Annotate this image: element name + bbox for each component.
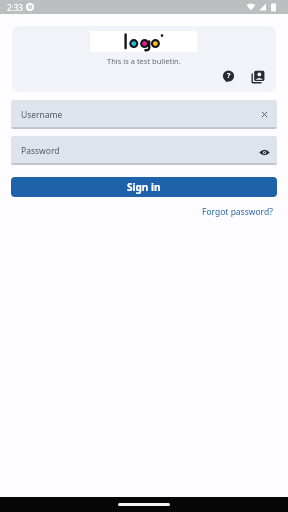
- button[interactable]: Sign in: [11, 177, 277, 197]
- staticText: ?: [227, 71, 231, 81]
- button[interactable]: [251, 70, 265, 84]
- staticText: Password: [21, 145, 60, 157]
- staticText: Forgot password?: [202, 206, 273, 218]
- staticText: 2:33: [7, 2, 23, 13]
- button[interactable]: Forgot password?: [180, 204, 273, 220]
- button[interactable]: ?: [222, 70, 235, 83]
- staticText: This is a test bulletin.: [107, 56, 181, 66]
- button[interactable]: Password: [11, 136, 277, 165]
- button[interactable]: Username: [11, 100, 277, 129]
- staticText: Sign in: [127, 180, 161, 194]
- staticText: Username: [21, 109, 63, 121]
